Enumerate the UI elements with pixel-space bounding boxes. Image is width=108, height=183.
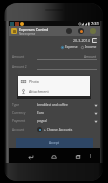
staticText: Income [85,45,97,49]
button[interactable]: Pick date [92,38,97,43]
staticText: Expense [65,45,78,49]
staticText: Attachment [29,89,49,94]
button[interactable]: Photo [18,76,90,86]
button[interactable] [37,63,97,70]
button[interactable]: Accept [16,138,93,148]
staticText: Amount [84,55,97,59]
staticText: + Choose Accounts [44,128,73,132]
staticText: Euro [37,111,44,115]
staticText: Account [12,128,37,132]
staticText: Amount 2 [12,65,37,69]
button[interactable]: Back [25,150,37,162]
staticText: breakfast and coffee [37,103,68,107]
button[interactable]: Menu [86,150,94,162]
button[interactable]: Amount [37,53,97,60]
staticText: paypal [37,119,47,123]
staticText: 20-3-2014 [73,38,90,43]
staticText: Payment [12,119,37,123]
button[interactable]: Attachment [18,86,90,96]
button[interactable]: Attach [87,26,99,36]
button[interactable]: Income [81,45,97,49]
button[interactable]: Currency [9,109,100,117]
button[interactable]: Type [9,101,100,109]
staticText: Accept [49,141,60,145]
staticText: Expenses Control [19,27,49,32]
button[interactable]: Account [9,125,100,134]
staticText: Type [12,103,37,107]
button[interactable]: Payment [9,117,100,125]
staticText: Photo [29,79,40,84]
button[interactable]: Save [75,26,87,36]
staticText: Amount [12,55,37,59]
staticText: 7:31 [91,21,99,26]
button[interactable]: Expense [61,45,78,49]
button[interactable]: More [63,26,75,36]
button[interactable]: Recent apps [72,150,84,162]
button[interactable]: Home [48,150,60,162]
button[interactable]: App icon [11,28,17,34]
staticText: Currency [12,111,37,115]
staticText: New expense [19,32,36,36]
